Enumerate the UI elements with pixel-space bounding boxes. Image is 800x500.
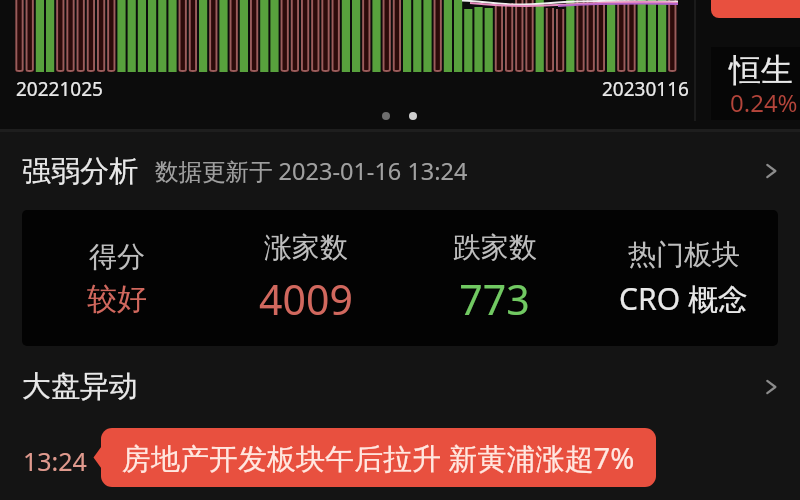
staticText: 20221025	[16, 76, 103, 102]
staticText: 跌家数	[453, 230, 537, 265]
staticText: 773	[459, 271, 530, 327]
other: More	[760, 376, 782, 398]
button[interactable]: 恒生	[711, 47, 800, 120]
staticText: 得分	[89, 239, 145, 274]
staticText: CRO 概念	[619, 278, 748, 319]
staticText: 数据更新于 2023-01-16 13:24	[155, 155, 468, 187]
button[interactable]: 得分	[22, 210, 778, 346]
button[interactable]	[711, 0, 800, 18]
staticText: 大盘异动	[22, 368, 138, 405]
button[interactable]: 大盘异动	[0, 346, 800, 427]
staticText: 4009	[259, 271, 353, 327]
staticText: 较好	[87, 280, 147, 318]
staticText: 强弱分析	[22, 153, 138, 190]
staticText: 房地产开发板块午后拉升 新黄浦涨超7%	[122, 438, 635, 478]
staticText: 热门板块	[628, 237, 740, 272]
staticText: 0.24%	[730, 86, 798, 119]
button[interactable]: 强弱分析	[0, 132, 800, 210]
button[interactable]: 13:24	[0, 427, 800, 500]
staticText: 20230116	[602, 76, 689, 102]
staticText: 恒生	[729, 50, 793, 90]
staticText: 涨家数	[264, 230, 348, 265]
staticText: 13:24	[23, 444, 87, 478]
other: More	[760, 160, 782, 182]
